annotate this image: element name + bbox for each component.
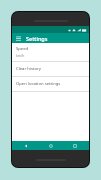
button[interactable]: Speed (12, 43, 89, 61)
staticText: Speed (16, 46, 29, 52)
button[interactable]: Recent apps (65, 141, 85, 150)
button[interactable]: Home (41, 141, 61, 150)
staticText: Settings (26, 35, 48, 42)
button[interactable]: Clear history (12, 62, 89, 76)
staticText: Open location settings (16, 81, 61, 87)
button[interactable]: Back (16, 141, 36, 150)
staticText: km/h (16, 53, 25, 58)
button[interactable]: Open location settings (12, 77, 89, 91)
button[interactable]: Open navigation drawer (15, 35, 22, 42)
staticText: Clear history (16, 66, 41, 72)
